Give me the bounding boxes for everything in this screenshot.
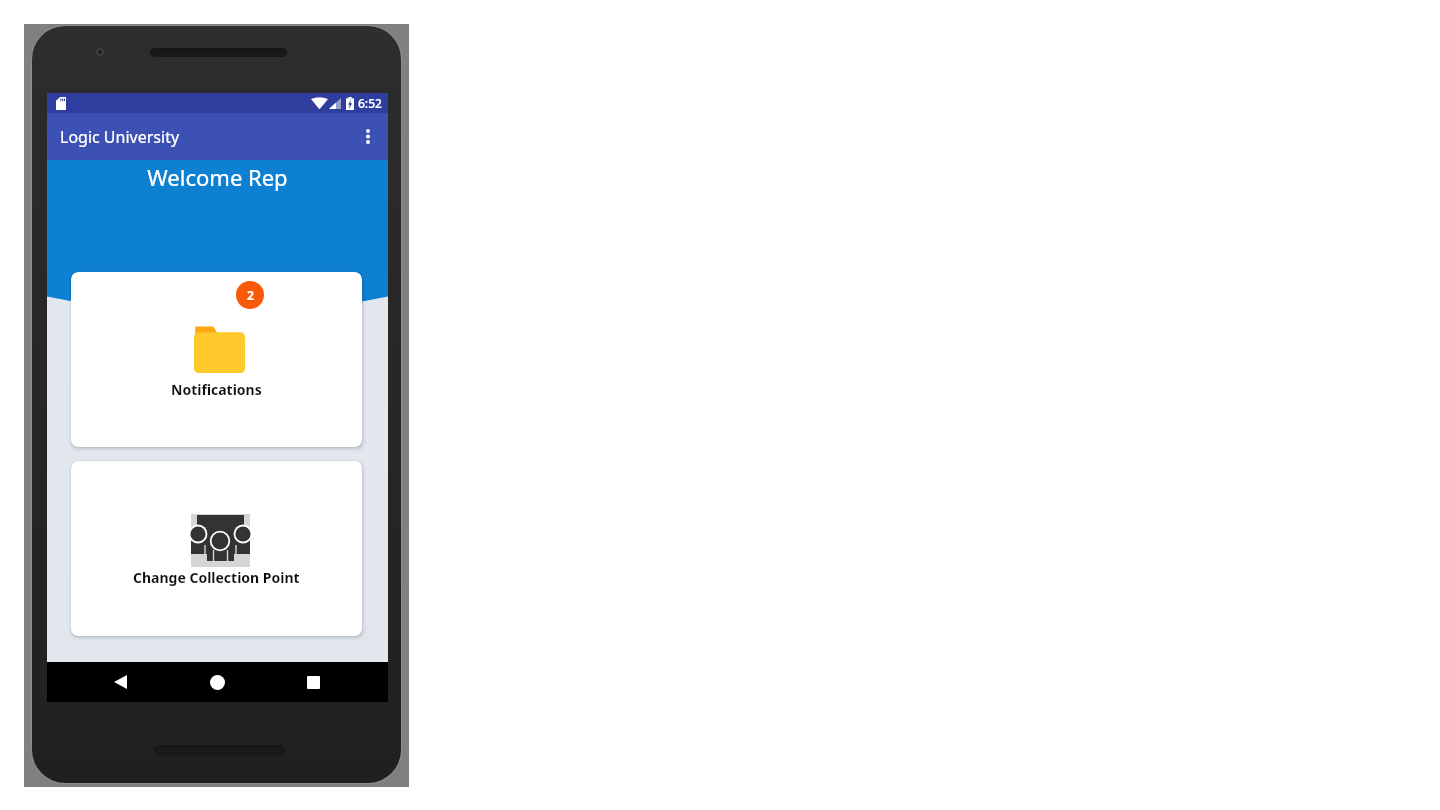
staticText: 2 (247, 287, 254, 303)
button[interactable]: Change Collection Point (71, 461, 362, 636)
staticText: Logic University (60, 126, 180, 148)
button[interactable]: 2 (71, 272, 362, 447)
staticText: Notifications (171, 380, 262, 399)
button[interactable]: Recent apps (295, 662, 331, 702)
staticText: 6:52 (358, 95, 382, 111)
button[interactable]: Home (199, 662, 235, 702)
button[interactable]: More options (348, 113, 388, 160)
staticText: Change Collection Point (133, 568, 300, 587)
button[interactable]: Back (102, 662, 138, 702)
staticText: Welcome Rep (147, 162, 288, 192)
